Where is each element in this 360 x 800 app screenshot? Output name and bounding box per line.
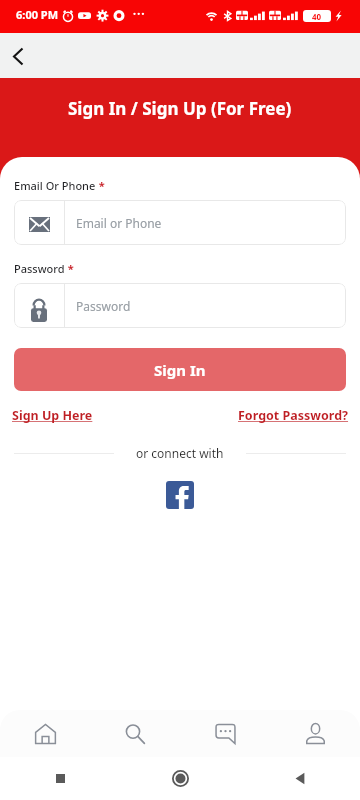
staticText: 40 xyxy=(312,11,322,22)
button[interactable]: Forgot Password? xyxy=(238,407,349,424)
staticText: or connect with xyxy=(136,445,224,461)
staticText: 6:00 PM xyxy=(16,7,59,22)
staticText: * xyxy=(65,261,74,276)
staticText: Password xyxy=(76,298,131,314)
button[interactable]: Sign Up Here xyxy=(12,407,93,424)
staticText: Email Or Phone xyxy=(14,178,96,193)
staticText: Password xyxy=(14,261,65,276)
staticText: Sign In xyxy=(154,360,206,380)
staticText: * xyxy=(96,178,105,193)
button[interactable]: Email or Phone xyxy=(14,200,346,245)
button[interactable]: Messages xyxy=(180,710,270,757)
staticText: Sign In / Sign Up (For Free) xyxy=(68,97,292,120)
button[interactable]: Search xyxy=(90,710,180,757)
button[interactable]: Back xyxy=(0,38,36,74)
button[interactable]: Profile xyxy=(270,710,360,757)
button[interactable]: Home xyxy=(0,710,90,757)
button[interactable]: Password xyxy=(14,283,346,328)
button[interactable]: Sign in with Facebook xyxy=(166,481,194,509)
button[interactable]: Sign In xyxy=(14,348,346,391)
staticText: Email or Phone xyxy=(76,215,162,231)
